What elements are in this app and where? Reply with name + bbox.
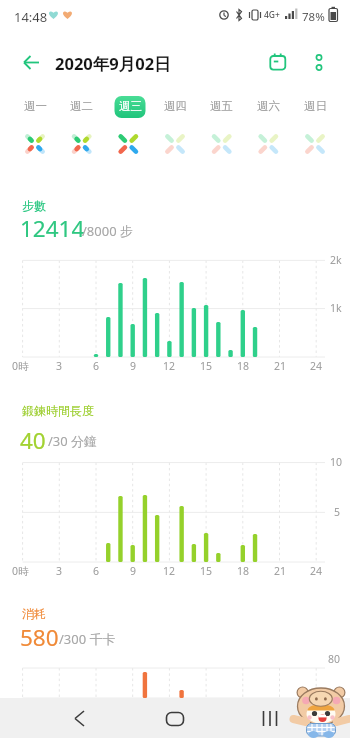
- button[interactable]: [60, 92, 104, 167]
- button[interactable]: [305, 48, 335, 78]
- staticText: 10: [330, 455, 343, 469]
- staticText: 3: [56, 564, 63, 578]
- staticText: 消耗: [22, 606, 46, 621]
- staticText: 週六: [257, 99, 280, 113]
- staticText: /8000 步: [82, 222, 133, 240]
- staticText: /30 分鐘: [48, 432, 98, 450]
- staticText: 週四: [164, 99, 187, 113]
- button[interactable]: [106, 92, 150, 167]
- staticText: 12: [163, 564, 176, 578]
- staticText: 40: [20, 425, 46, 456]
- staticText: 21: [274, 564, 287, 578]
- button[interactable]: [13, 92, 57, 167]
- staticText: 6: [93, 564, 100, 578]
- button[interactable]: [200, 92, 244, 167]
- staticText: 2k: [330, 253, 342, 267]
- staticText: 15: [200, 359, 213, 373]
- staticText: /300 千卡: [59, 630, 116, 648]
- staticText: 週二: [70, 99, 93, 113]
- staticText: 24: [310, 359, 323, 373]
- staticText: 0時: [12, 564, 29, 578]
- button[interactable]: [245, 698, 305, 738]
- staticText: 21: [274, 359, 287, 373]
- staticText: 鍛鍊時間長度: [22, 403, 94, 418]
- staticText: 9: [130, 564, 137, 578]
- staticText: 6: [93, 359, 100, 373]
- staticText: 12: [163, 359, 176, 373]
- button[interactable]: [262, 48, 294, 78]
- staticText: 1k: [330, 301, 342, 315]
- staticText: 12414: [20, 213, 85, 244]
- staticText: 580: [20, 622, 59, 653]
- staticText: 18: [237, 359, 250, 373]
- staticText: 週日: [304, 99, 327, 113]
- staticText: 週一: [24, 99, 47, 113]
- button[interactable]: [14, 48, 46, 78]
- staticText: 週三: [119, 99, 142, 113]
- staticText: 3: [56, 359, 63, 373]
- staticText: 14:48: [14, 8, 48, 26]
- staticText: 15: [200, 564, 213, 578]
- staticText: 週五: [210, 99, 233, 113]
- staticText: 2020年9月02日: [55, 52, 171, 75]
- button[interactable]: [246, 92, 290, 167]
- staticText: 5: [334, 505, 341, 519]
- staticText: 0時: [12, 359, 29, 373]
- staticText: 80: [328, 652, 341, 666]
- button[interactable]: [153, 92, 197, 167]
- staticText: 9: [130, 359, 137, 373]
- button[interactable]: [145, 698, 205, 738]
- staticText: 4G+: [264, 9, 280, 21]
- staticText: 步數: [22, 198, 46, 213]
- button[interactable]: [293, 92, 337, 167]
- staticText: 24: [310, 564, 323, 578]
- button[interactable]: [55, 698, 115, 738]
- staticText: 78%: [302, 9, 325, 25]
- staticText: 18: [237, 564, 250, 578]
